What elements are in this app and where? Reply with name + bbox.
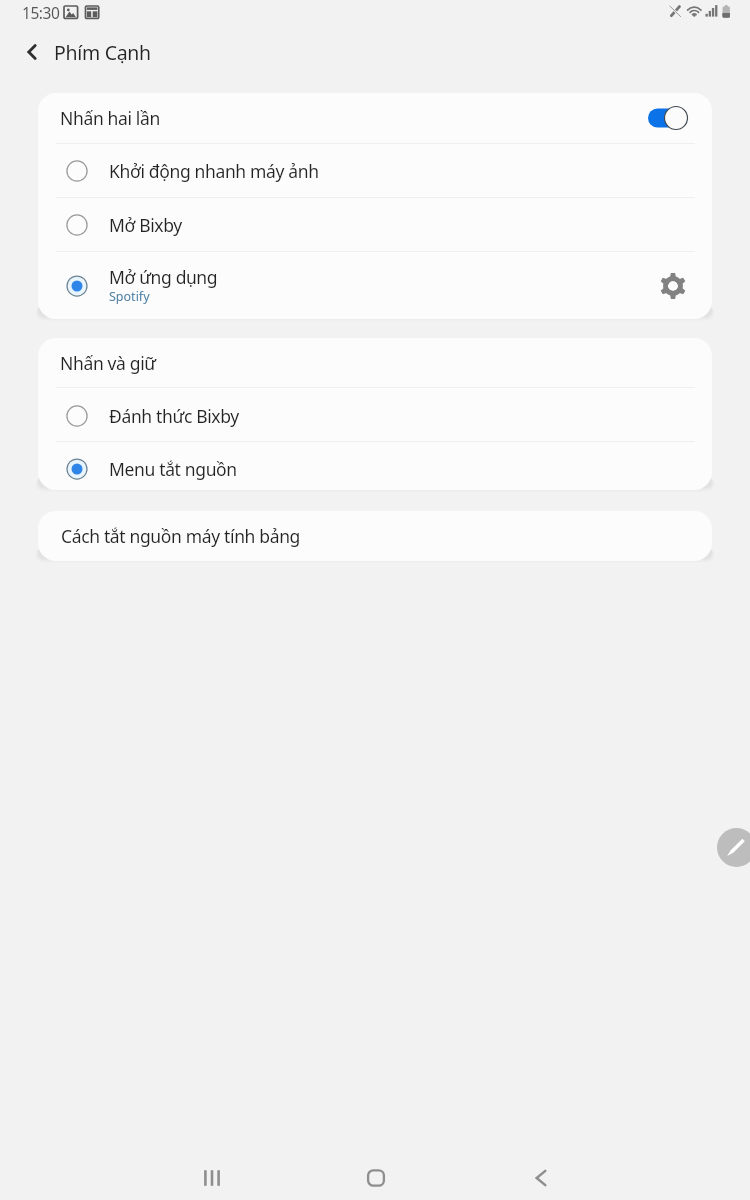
button[interactable]: Toggle double press [648,106,692,130]
button[interactable]: Khởi động nhanh máy ảnh [38,144,712,197]
staticText: Nhấn hai lần [60,106,160,130]
button[interactable]: Mở Bixby [38,198,712,251]
button[interactable]: Edit [717,828,750,867]
staticText: Spotify [109,288,150,305]
staticText: Mở Bixby [109,213,182,237]
button[interactable]: Cách tắt nguồn máy tính bảng [38,511,712,561]
button[interactable]: Home [340,1150,412,1200]
button[interactable]: Nhấn hai lần [38,93,712,143]
button[interactable]: Menu tắt nguồn [38,442,712,490]
staticText: Cách tắt nguồn máy tính bảng [61,524,301,548]
staticText: 15:30 [22,2,60,23]
button[interactable]: Navigate up [8,28,56,76]
staticText: Mở ứng dụng [109,265,218,289]
button[interactable]: Đánh thức Bixby [38,388,712,441]
staticText: Phím Cạnh [54,39,151,66]
button[interactable]: Back [505,1150,577,1200]
staticText: Đánh thức Bixby [109,404,239,428]
staticText: Khởi động nhanh máy ảnh [109,159,319,183]
button[interactable]: Recent apps [176,1150,248,1200]
staticText: Menu tắt nguồn [109,457,237,481]
button[interactable]: App settings [658,271,688,301]
button[interactable]: Mở ứng dụng [38,252,712,319]
staticText: Nhấn và giữ [60,351,156,375]
